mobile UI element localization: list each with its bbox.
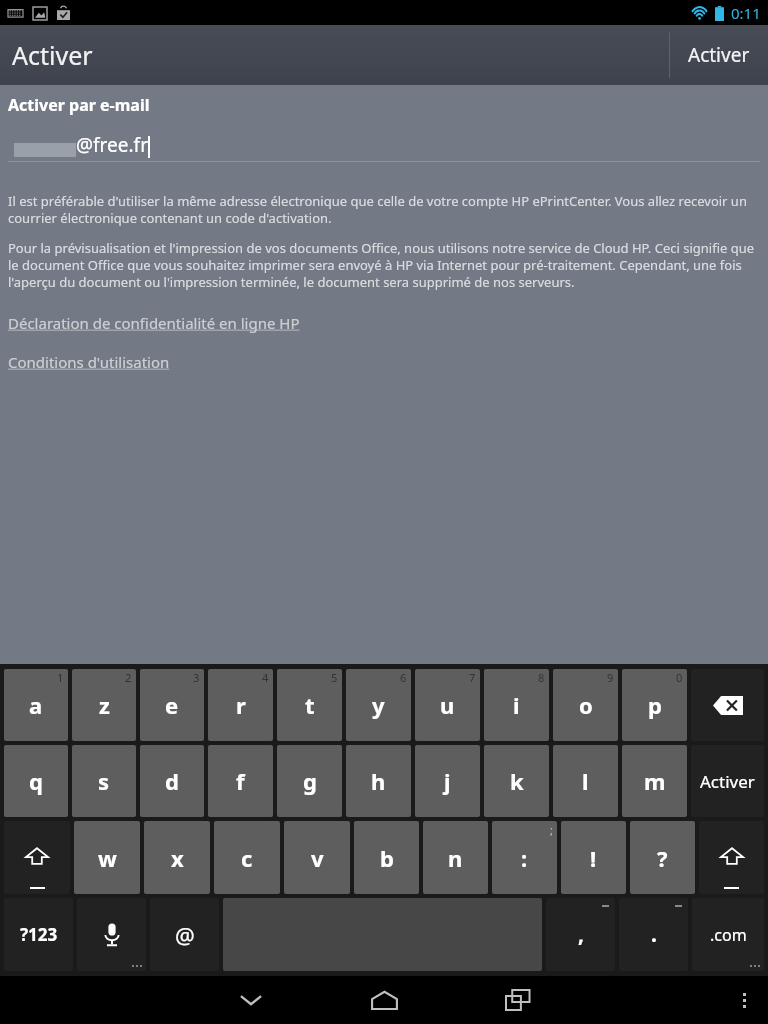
button[interactable]: Recent apps	[489, 976, 547, 1024]
button[interactable]: o	[553, 669, 618, 741]
button[interactable]: e	[140, 669, 204, 741]
button[interactable]: Déclaration de confidentialité en ligne …	[8, 313, 300, 333]
button[interactable]: r	[208, 669, 273, 741]
button[interactable]: l	[553, 745, 618, 817]
staticText: !	[590, 843, 597, 873]
staticText: 0:11	[731, 3, 761, 23]
button[interactable]: Shift	[4, 821, 70, 894]
staticText: ,	[578, 920, 584, 949]
staticText: s	[98, 766, 110, 796]
staticText: p	[648, 690, 662, 720]
staticText: e	[165, 690, 179, 720]
staticText: Activer	[688, 42, 750, 68]
button[interactable]: @	[150, 898, 219, 971]
staticText: 3	[193, 670, 200, 685]
staticText: q	[29, 766, 43, 796]
staticText: h	[371, 766, 386, 796]
button[interactable]: !	[561, 821, 626, 894]
staticText: w	[98, 843, 117, 873]
staticText: d	[165, 766, 179, 796]
staticText: n	[448, 843, 463, 873]
button[interactable]: h	[346, 745, 411, 817]
button[interactable]: Shift	[699, 821, 764, 894]
staticText: Déclaration de confidentialité en ligne …	[8, 313, 300, 333]
staticText: Activer	[700, 770, 755, 793]
staticText: u	[440, 690, 455, 720]
button[interactable]: Hide keyboard	[222, 976, 280, 1024]
button[interactable]: f	[208, 745, 273, 817]
button[interactable]: .com	[692, 898, 764, 971]
button[interactable]: p	[622, 669, 687, 741]
button[interactable]: Activer	[670, 25, 768, 85]
button[interactable]: z	[72, 669, 136, 741]
button[interactable]: Activer	[0, 25, 93, 85]
staticText: y	[372, 690, 385, 720]
staticText: ?123	[20, 923, 58, 946]
staticText: ;	[550, 822, 553, 837]
staticText: Conditions d'utilisation	[8, 352, 170, 372]
button[interactable]: w	[74, 821, 140, 894]
button[interactable]: ?	[630, 821, 695, 894]
staticText: t	[305, 690, 315, 720]
staticText: 5	[331, 670, 338, 685]
staticText: Il est préférable d'utiliser la même adr…	[8, 192, 760, 227]
button[interactable]: j	[415, 745, 480, 817]
staticText: :	[521, 843, 528, 873]
staticText: 4	[262, 670, 269, 685]
button[interactable]: Voice input	[77, 898, 146, 971]
staticText: 9	[607, 670, 614, 685]
staticText: @free.fr	[76, 132, 148, 158]
button[interactable]: ?123	[4, 898, 73, 971]
button[interactable]: v	[284, 821, 350, 894]
button[interactable]: More options	[720, 976, 768, 1024]
button[interactable]: y	[346, 669, 411, 741]
staticText: c	[241, 843, 253, 873]
staticText: Activer	[12, 38, 93, 72]
button[interactable]: i	[484, 669, 549, 741]
button[interactable]: x	[144, 821, 210, 894]
button[interactable]: Home	[355, 976, 413, 1024]
button[interactable]: q	[4, 745, 68, 817]
button[interactable]: a	[4, 669, 68, 741]
staticText: .	[651, 920, 657, 949]
staticText: ?	[657, 843, 668, 873]
staticText: .com	[710, 924, 747, 946]
staticText: k	[510, 766, 524, 796]
staticText: r	[236, 690, 246, 720]
button[interactable]: Conditions d'utilisation	[8, 352, 170, 372]
staticText: v	[311, 843, 324, 873]
staticText: 6	[400, 670, 407, 685]
button[interactable]: c	[214, 821, 280, 894]
button[interactable]: Backspace	[691, 669, 764, 741]
button[interactable]: ,	[546, 898, 615, 971]
button[interactable]: t	[277, 669, 342, 741]
staticText: a	[29, 690, 43, 720]
staticText: b	[380, 843, 394, 873]
staticText: i	[513, 690, 520, 720]
staticText: o	[579, 690, 593, 720]
staticText: 1	[57, 670, 64, 685]
staticText: 2	[125, 670, 132, 685]
button[interactable]: d	[140, 745, 204, 817]
staticText: m	[644, 766, 666, 796]
staticText: l	[582, 766, 589, 796]
button[interactable]: s	[72, 745, 136, 817]
staticText: x	[171, 843, 184, 873]
button[interactable]: b	[354, 821, 419, 894]
button[interactable]: .	[619, 898, 688, 971]
button[interactable]: Activer	[691, 745, 764, 817]
button[interactable]: @free.fr	[8, 132, 760, 162]
button[interactable]: n	[423, 821, 488, 894]
staticText: 7	[469, 670, 476, 685]
button[interactable]: k	[484, 745, 549, 817]
button[interactable]: :	[492, 821, 557, 894]
button[interactable]: u	[415, 669, 480, 741]
staticText: 0	[676, 670, 683, 685]
staticText: z	[99, 690, 110, 720]
staticText: Activer par e-mail	[8, 94, 150, 116]
staticText: 8	[538, 670, 545, 685]
button[interactable]: g	[277, 745, 342, 817]
button[interactable]: m	[622, 745, 687, 817]
staticText: g	[303, 766, 317, 796]
